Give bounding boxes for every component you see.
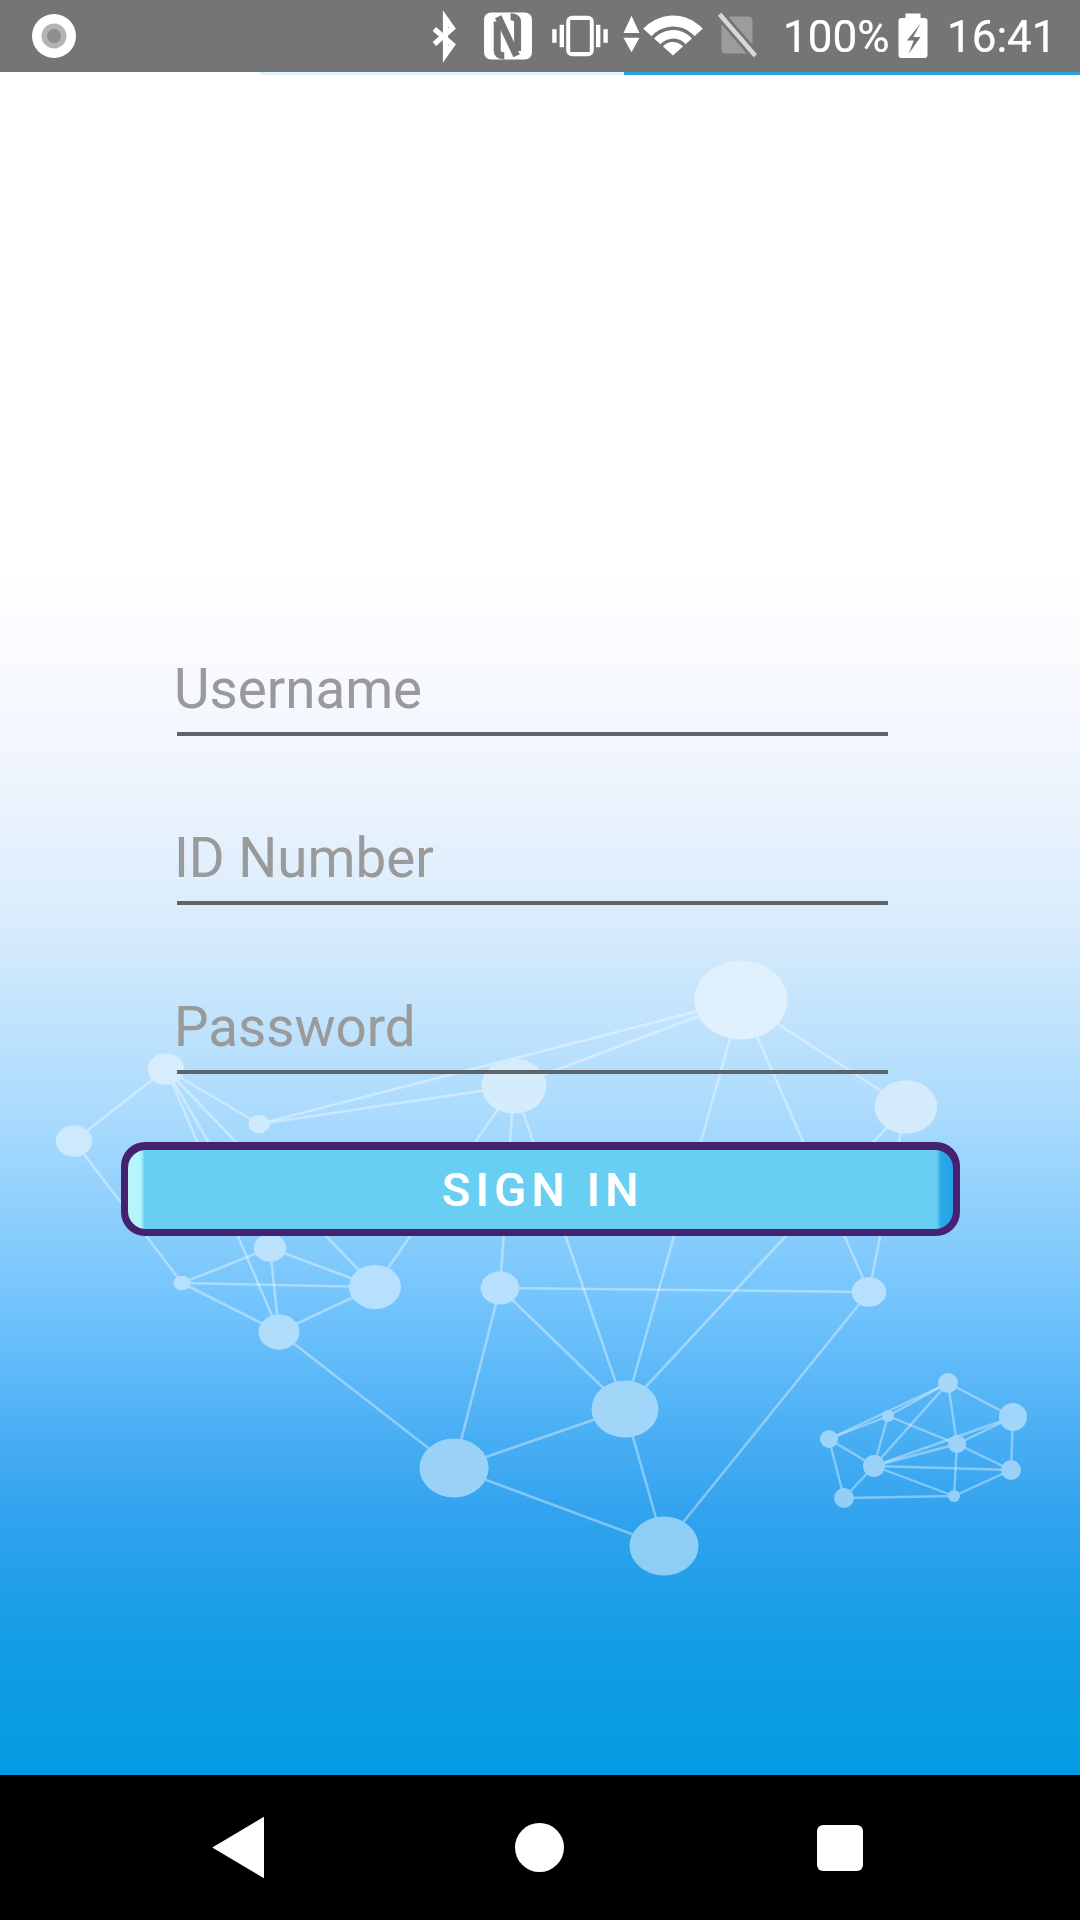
staticText: 16:41 — [947, 11, 1057, 63]
staticText: 100% — [783, 11, 890, 63]
staticText: SIGN IN — [442, 1162, 644, 1217]
staticText: ID Number — [174, 826, 434, 890]
staticText: Password — [174, 995, 416, 1059]
button[interactable]: Back — [168, 1775, 313, 1920]
button[interactable]: Recents — [767, 1775, 912, 1920]
button[interactable]: Password — [177, 994, 888, 1074]
button[interactable]: ID Number — [177, 825, 888, 905]
button[interactable]: SIGN IN — [121, 1142, 960, 1236]
button[interactable]: Home — [467, 1775, 612, 1920]
staticText: Username — [174, 657, 423, 721]
button[interactable]: Username — [177, 656, 888, 736]
